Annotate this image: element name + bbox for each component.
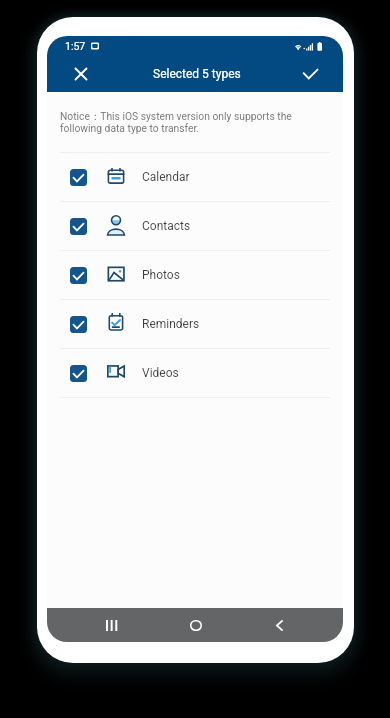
staticText: 1:57 bbox=[65, 40, 86, 52]
staticText: Contacts bbox=[142, 219, 191, 233]
button[interactable]: Close bbox=[63, 56, 99, 92]
staticText: Videos bbox=[142, 366, 179, 380]
button[interactable]: Reminders bbox=[47, 300, 343, 348]
staticText: Reminders bbox=[142, 317, 200, 331]
staticText: Notice：This iOS system version only supp… bbox=[60, 110, 325, 134]
button[interactable]: Confirm bbox=[292, 56, 328, 92]
staticText: Photos bbox=[142, 268, 180, 282]
button[interactable]: Calendar bbox=[47, 153, 343, 201]
button[interactable]: Recents bbox=[92, 608, 132, 642]
staticText: Selected 5 types bbox=[153, 67, 241, 81]
button[interactable]: Videos bbox=[47, 349, 343, 397]
button[interactable]: Contacts bbox=[47, 202, 343, 250]
staticText: Calendar bbox=[142, 170, 190, 184]
button[interactable]: Home bbox=[176, 608, 216, 642]
button[interactable]: Back bbox=[259, 608, 299, 642]
button[interactable]: Photos bbox=[47, 251, 343, 299]
